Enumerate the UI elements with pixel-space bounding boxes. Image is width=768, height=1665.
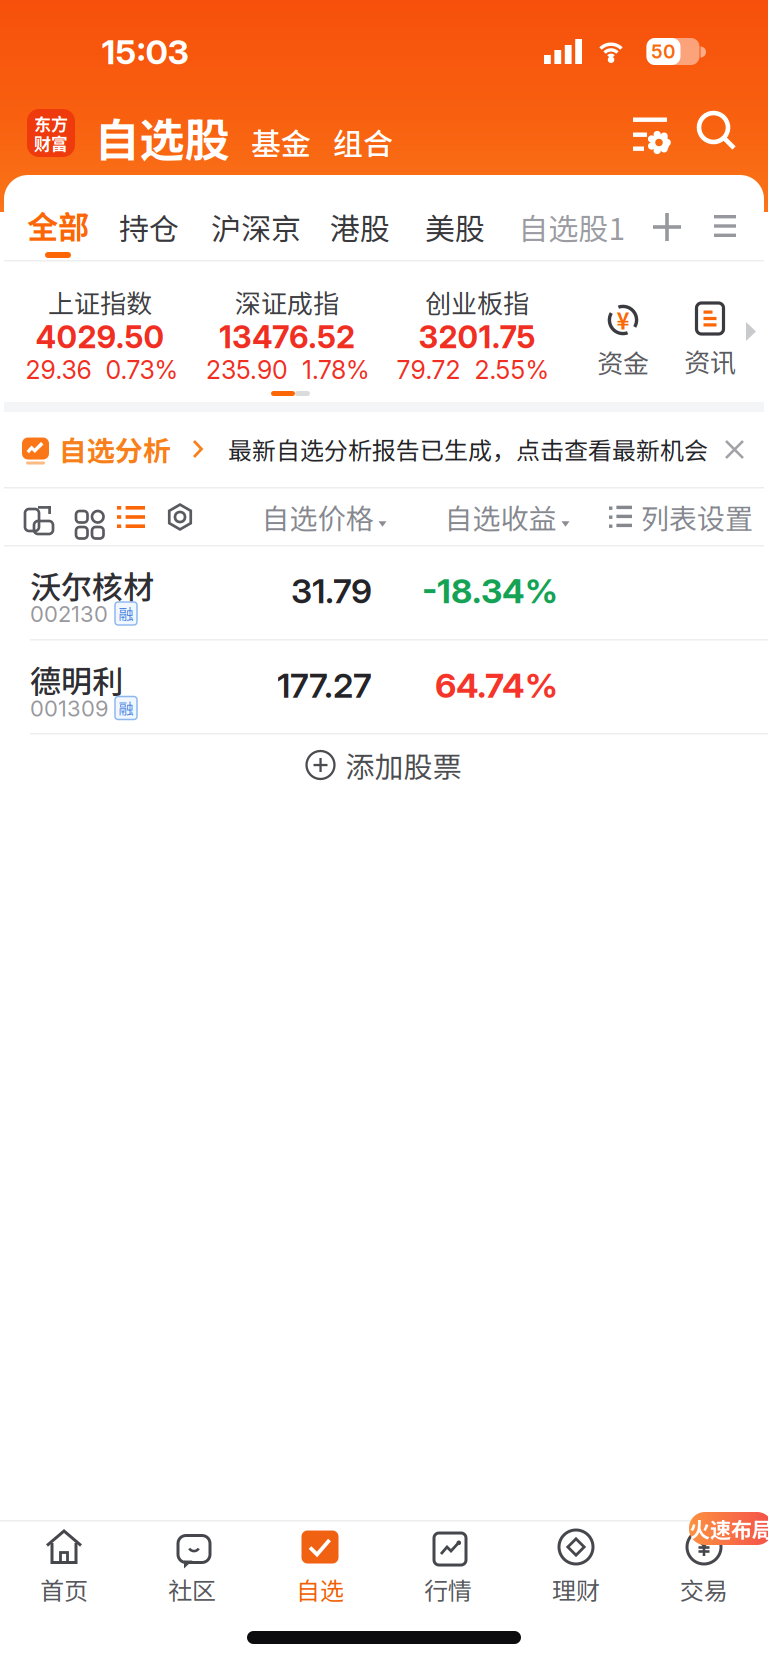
staticText: 自选价格 xyxy=(261,497,373,537)
button[interactable]: 自选收益 xyxy=(438,491,575,543)
staticText: 社区 xyxy=(168,1572,216,1607)
staticText: -18.34% xyxy=(422,570,558,611)
staticText: 组合 xyxy=(333,120,393,164)
staticText: 79.72 2.55% xyxy=(396,355,549,385)
staticText: 美股 xyxy=(425,205,485,249)
staticText: 列表设置 xyxy=(641,497,753,537)
staticText: 行情 xyxy=(424,1572,472,1607)
staticText: 沃尔核材 xyxy=(30,563,154,607)
staticText: 交易 xyxy=(680,1572,728,1607)
staticText: 东方 xyxy=(34,111,68,135)
button[interactable]: 社区 xyxy=(128,1529,256,1607)
staticText: 沪深京 xyxy=(211,205,301,249)
button[interactable]: 全部 xyxy=(0,196,116,262)
button[interactable]: 平铺视图 xyxy=(20,503,49,531)
staticText: ¥ xyxy=(616,304,629,336)
button[interactable]: 理财 xyxy=(512,1529,640,1607)
button[interactable]: 港股 xyxy=(326,201,394,253)
staticText: 3201.75 xyxy=(418,318,535,356)
staticText: 自选收益 xyxy=(444,497,556,537)
button[interactable]: 列表视图 xyxy=(117,506,145,528)
staticText: 深证成指 xyxy=(235,283,339,321)
staticText: 4029.50 xyxy=(35,318,164,356)
staticText: 持仓 xyxy=(119,205,179,249)
button[interactable]: 列表设置 xyxy=(603,491,759,543)
staticText: 29.36 0.73% xyxy=(25,355,178,385)
button[interactable]: 沃尔核材 xyxy=(0,546,768,639)
staticText: 德明利 xyxy=(30,657,123,702)
button[interactable]: 创业板指 xyxy=(387,285,567,395)
button[interactable]: 编辑自选 xyxy=(627,111,675,158)
button[interactable]: 深证成指 xyxy=(197,285,377,395)
staticText: 基金 xyxy=(251,120,311,164)
button[interactable]: 自选设置 xyxy=(166,503,194,531)
button[interactable]: 美股 xyxy=(421,201,489,253)
button[interactable]: 自选 xyxy=(256,1529,384,1607)
button[interactable]: 自选价格 xyxy=(255,491,392,543)
button[interactable]: 分组设置 xyxy=(708,209,742,243)
staticText: 15:03 xyxy=(101,31,188,72)
staticText: 首页 xyxy=(40,1572,88,1607)
button[interactable]: 自选分析 xyxy=(0,412,700,486)
button[interactable]: 沪深京 xyxy=(207,201,305,253)
staticText: 创业板指 xyxy=(425,283,529,321)
staticText: 全部 xyxy=(27,203,89,247)
staticText: 最新自选分析报告已生成，点击查看最新机会 xyxy=(228,432,708,466)
staticText: 自选分析 xyxy=(59,429,171,469)
button[interactable]: 资讯 xyxy=(684,303,736,380)
button[interactable]: 行情 xyxy=(384,1529,512,1607)
button[interactable]: 添加股票 xyxy=(0,734,768,796)
staticText: 理财 xyxy=(552,1572,600,1607)
staticText: 64.74% xyxy=(435,665,558,706)
staticText: 财富 xyxy=(34,130,68,155)
staticText: 添加股票 xyxy=(345,744,461,786)
button[interactable]: 基金 xyxy=(245,114,317,170)
staticText: 13476.52 xyxy=(219,318,355,356)
button[interactable]: 搜索 xyxy=(694,108,741,155)
staticText: 002130 xyxy=(30,601,108,627)
staticText: 港股 xyxy=(330,205,390,249)
staticText: 资讯 xyxy=(684,342,736,380)
staticText: 31.79 xyxy=(291,570,372,611)
staticText: 上证指数 xyxy=(48,283,152,321)
staticText: 火速布局 xyxy=(689,1513,768,1544)
staticText: 自选 xyxy=(296,1572,344,1607)
staticText: 001309 xyxy=(30,695,109,722)
staticText: 自选股1 xyxy=(518,205,625,249)
staticText: 50 xyxy=(651,40,676,63)
button[interactable]: 宫格视图 xyxy=(68,503,95,530)
staticText: 融 xyxy=(118,603,133,624)
staticText: 235.90 1.78% xyxy=(206,355,370,385)
staticText: 自选股 xyxy=(94,104,229,170)
staticText: 融 xyxy=(118,697,133,719)
button[interactable]: 交易 xyxy=(640,1529,768,1607)
button[interactable]: 德明利 xyxy=(0,640,768,733)
button[interactable]: 持仓 xyxy=(115,201,183,253)
button[interactable]: 上证指数 xyxy=(10,285,190,395)
button[interactable]: 添加分组 xyxy=(649,209,685,245)
button[interactable]: 首页 xyxy=(0,1529,128,1607)
button[interactable]: 自选股1 xyxy=(514,201,629,253)
staticText: 资金 xyxy=(597,343,649,381)
button[interactable]: ¥ xyxy=(597,303,649,381)
button[interactable]: 组合 xyxy=(327,114,399,170)
button[interactable]: 关闭 xyxy=(718,433,751,466)
staticText: 177.27 xyxy=(277,665,372,706)
